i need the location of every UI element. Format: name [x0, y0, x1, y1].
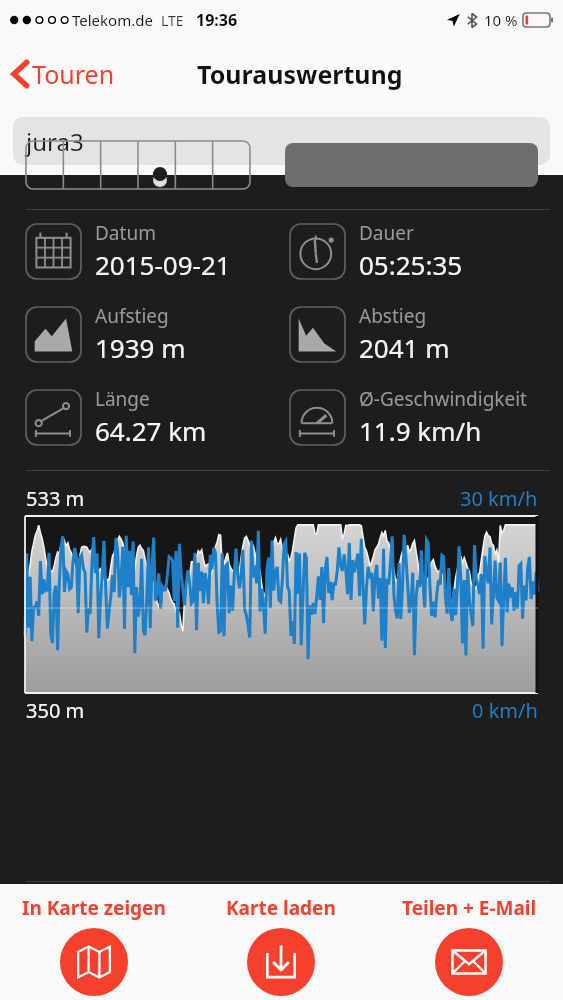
- staticText: Ø-Geschwindigkeit: [359, 386, 527, 412]
- button[interactable]: Touren: [12, 57, 121, 91]
- staticText: LTE: [161, 11, 184, 30]
- staticText: 11.9 km/h: [359, 413, 482, 448]
- staticText: In Karte zeigen: [22, 895, 166, 921]
- button[interactable]: Länge: [25, 386, 281, 448]
- staticText: Tourauswertung: [197, 57, 403, 91]
- staticText: Karte laden: [226, 895, 336, 921]
- staticText: 2041 m: [359, 330, 450, 365]
- button[interactable]: Dauer: [289, 220, 563, 282]
- button[interactable]: Abstieg: [289, 303, 563, 365]
- other: In Karte zeigen: [60, 928, 128, 996]
- staticText: 533 m: [26, 485, 85, 512]
- staticText: Datum: [95, 220, 156, 246]
- button[interactable]: Aufstieg: [25, 303, 281, 365]
- staticText: Telekom.de: [72, 10, 153, 30]
- staticText: Teilen + E-Mail: [402, 895, 537, 921]
- button[interactable]: Teilen + E-Mail: [375, 884, 563, 1000]
- button[interactable]: Datum: [25, 220, 281, 282]
- staticText: Dauer: [359, 220, 414, 246]
- staticText: 19:36: [196, 9, 238, 31]
- staticText: Aufstieg: [95, 303, 169, 329]
- button[interactable]: jura3: [13, 117, 550, 165]
- staticText: 1939 m: [95, 330, 186, 365]
- button[interactable]: Karte laden: [187, 884, 375, 1000]
- staticText: 30 km/h: [460, 485, 538, 512]
- staticText: jura3: [26, 125, 84, 158]
- staticText: 10 %: [484, 10, 518, 30]
- staticText: 0 km/h: [472, 697, 538, 724]
- staticText: 64.27 km: [95, 413, 207, 448]
- staticText: 05:25:35: [359, 247, 463, 282]
- staticText: 350 m: [26, 697, 85, 724]
- button[interactable]: Ø-Geschwindigkeit: [289, 386, 563, 448]
- other: Teilen + E-Mail: [435, 928, 503, 996]
- button[interactable]: In Karte zeigen: [0, 884, 187, 1000]
- staticText: Länge: [95, 386, 150, 412]
- staticText: 2015-09-21: [95, 247, 231, 282]
- other: Karte laden: [247, 928, 315, 996]
- staticText: Abstieg: [359, 303, 427, 329]
- staticText: Touren: [32, 57, 115, 91]
